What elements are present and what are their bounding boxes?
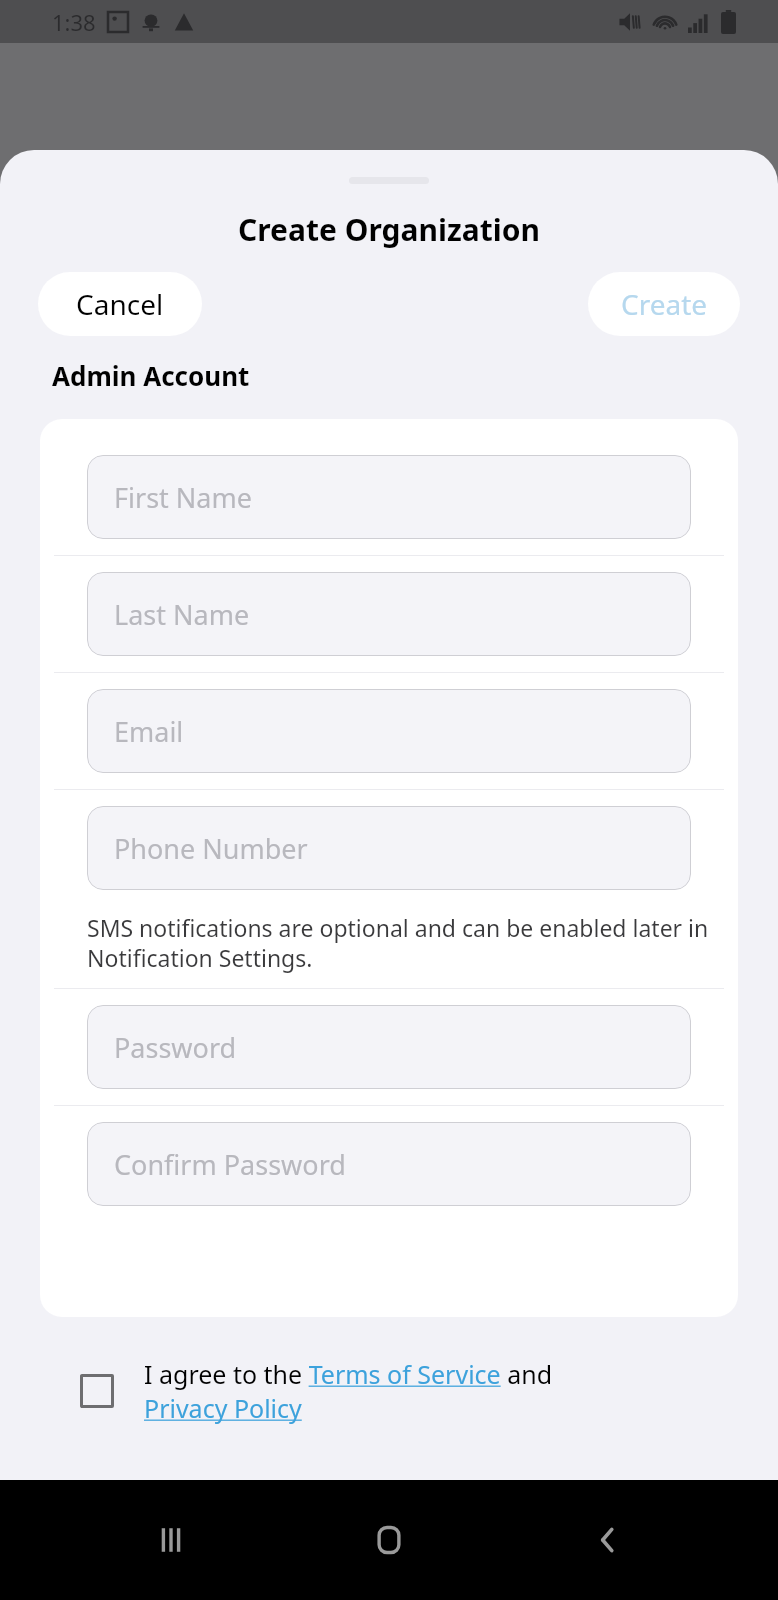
- staticText: Confirm Password: [114, 1146, 346, 1183]
- button[interactable]: Home: [341, 1492, 437, 1588]
- button[interactable]: Cancel: [38, 272, 202, 336]
- button[interactable]: Confirm Password: [40, 1106, 738, 1222]
- staticText: Create Organization: [238, 209, 540, 250]
- button[interactable]: First Name: [40, 439, 738, 555]
- button[interactable]: Email: [40, 673, 738, 789]
- staticText: Phone Number: [114, 830, 308, 867]
- button[interactable]: Create: [588, 272, 740, 336]
- button[interactable]: Password: [40, 989, 738, 1105]
- staticText: SMS notifications are optional and can b…: [87, 912, 712, 974]
- staticText: I agree to the Terms of Service and Priv…: [144, 1357, 553, 1425]
- button[interactable]: Phone Number: [40, 790, 738, 906]
- staticText: Email: [114, 713, 184, 750]
- button[interactable]: Agree to terms checkbox: [0, 1357, 778, 1425]
- staticText: First Name: [114, 479, 252, 516]
- button[interactable]: Back: [560, 1492, 656, 1588]
- button[interactable]: Last Name: [40, 556, 738, 672]
- staticText: Create: [621, 285, 708, 323]
- other: Agree to terms checkbox: [80, 1374, 114, 1408]
- staticText: Cancel: [76, 285, 164, 323]
- staticText: Password: [114, 1029, 237, 1066]
- staticText: Admin Account: [52, 358, 250, 393]
- staticText: Last Name: [114, 596, 250, 633]
- staticText: 1:38: [52, 7, 96, 37]
- button[interactable]: Recent apps: [123, 1492, 219, 1588]
